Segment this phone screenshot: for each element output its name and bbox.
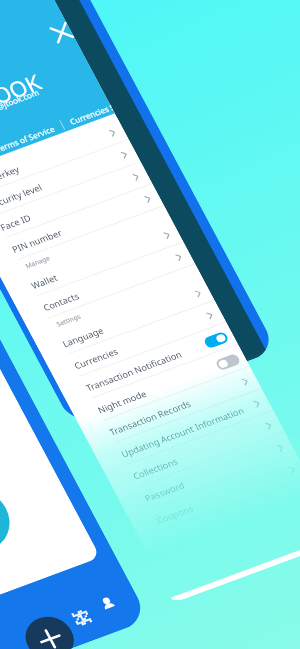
button[interactable]: Terms of Service (0, 106, 59, 171)
staticText: Updating Account Information (116, 369, 249, 494)
button[interactable]: Transaction Records (75, 318, 268, 499)
staticText: Password (139, 468, 189, 515)
button[interactable]: Night mode (64, 296, 256, 477)
button[interactable]: Updating Account Information (87, 340, 279, 521)
button[interactable]: PIN number (0, 136, 170, 317)
button[interactable]: Collections (99, 362, 291, 543)
button[interactable]: Language (28, 230, 221, 411)
button[interactable]: Transaction Notification (52, 274, 244, 455)
staticText: Currencies (69, 332, 123, 384)
staticText: Manage (22, 247, 53, 277)
button[interactable]: Contacts (9, 194, 201, 375)
staticText: Contacts (38, 280, 84, 323)
button[interactable]: Security level (0, 92, 147, 272)
button[interactable]: Face ID (0, 114, 158, 295)
staticText: Wallet (26, 264, 63, 298)
staticText: Face ID (0, 202, 36, 241)
staticText: PIN number (7, 212, 67, 269)
button[interactable]: Password (111, 385, 300, 565)
staticText: Coupons (151, 492, 198, 536)
staticText: Collections (128, 442, 183, 494)
staticText: Settings (53, 305, 85, 335)
staticText: JTOOK (0, 49, 53, 134)
staticText: Security level (0, 166, 47, 226)
button[interactable]: Currencies Settings (65, 90, 117, 139)
staticText: info@jtook.com (0, 71, 43, 133)
button[interactable]: Add (8, 598, 89, 649)
button[interactable]: Coupons (122, 407, 300, 587)
button[interactable]: Close (41, 14, 81, 52)
staticText: Night mode (92, 373, 152, 429)
staticText: Transaction Records (104, 374, 196, 460)
button[interactable]: Profile (94, 591, 122, 617)
staticText: Language (57, 312, 109, 361)
button[interactable]: Scan QR code (68, 604, 96, 631)
button[interactable]: Masterkey (0, 70, 135, 250)
staticText: Transaction Notification (81, 321, 187, 420)
button[interactable]: Wallet (0, 172, 190, 353)
button[interactable]: Currencies (40, 252, 232, 433)
staticText: Masterkey (0, 151, 24, 200)
